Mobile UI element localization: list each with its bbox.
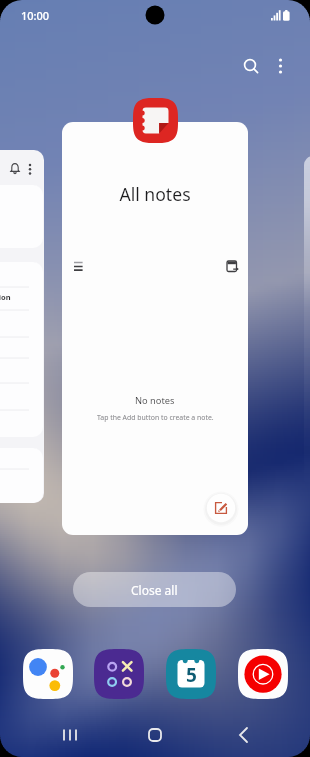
- button[interactable]: Recents: [45, 718, 95, 752]
- button[interactable]: Galaxy Store: [94, 649, 144, 699]
- button[interactable]: Create note: [203, 490, 239, 526]
- button[interactable]: Google Assistant: [23, 649, 73, 699]
- button[interactable]: YouTube Music: [238, 649, 288, 699]
- staticText: Close all: [131, 582, 178, 598]
- button[interactable]: All notes: [62, 122, 248, 535]
- staticText: 5: [186, 662, 197, 688]
- button[interactable]: Close all: [73, 572, 236, 607]
- staticText: All notes: [62, 182, 248, 206]
- button[interactable]: Calendar: [166, 649, 216, 699]
- button[interactable]: Search: [237, 52, 263, 78]
- button[interactable]: ication: [0, 150, 44, 503]
- button[interactable]: More options: [268, 52, 294, 78]
- staticText: Tap the Add button to create a note.: [97, 413, 214, 422]
- button[interactable]: Back: [218, 718, 268, 752]
- button[interactable]: Home: [130, 718, 180, 752]
- staticText: ication: [0, 292, 11, 302]
- staticText: No notes: [135, 394, 175, 407]
- staticText: 10:00: [21, 8, 50, 23]
